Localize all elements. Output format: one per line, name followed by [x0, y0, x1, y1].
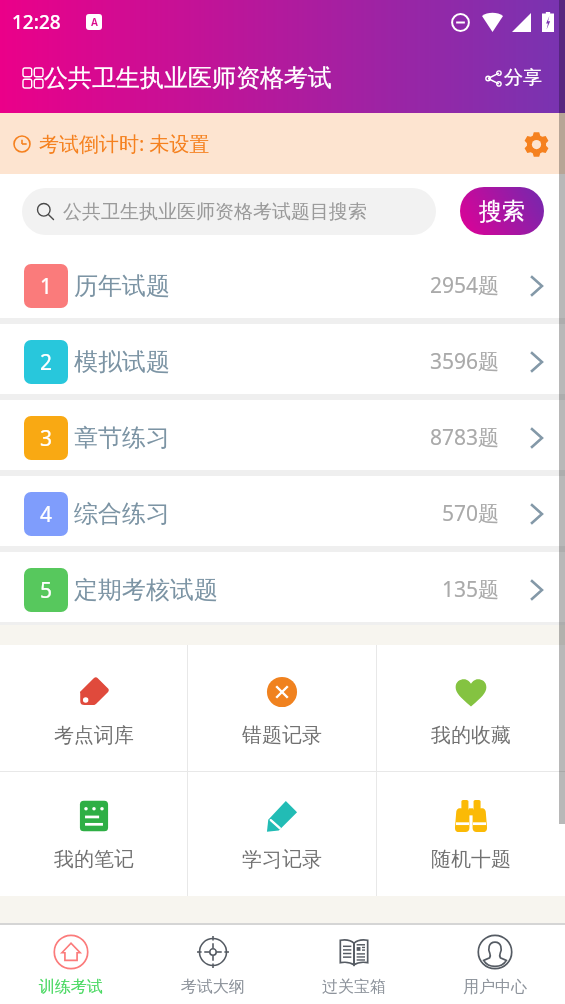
button[interactable]: 4 — [0, 476, 565, 546]
staticText: 训练考试 — [39, 977, 103, 997]
staticText: 公共卫生执业医师资格考试 — [44, 63, 332, 93]
button[interactable]: 考试倒计时: 未设置 — [0, 113, 565, 174]
staticText: 用户中心 — [463, 977, 527, 997]
staticText: 我的笔记 — [54, 847, 134, 872]
button[interactable]: 2 — [0, 324, 565, 394]
staticText: 综合练习 — [74, 499, 170, 529]
button[interactable]: 我的笔记 — [0, 772, 187, 896]
staticText: 章节练习 — [74, 423, 170, 453]
staticText: 2954题 — [430, 271, 500, 300]
staticText: 过关宝箱 — [322, 977, 386, 997]
button[interactable]: Settings — [520, 128, 552, 160]
button[interactable]: 我的收藏 — [377, 645, 565, 771]
button[interactable]: 公共卫生执业医师资格考试题目搜索 — [22, 188, 436, 235]
staticText: 1 — [40, 272, 53, 301]
staticText: 135题 — [442, 575, 500, 604]
staticText: 我的收藏 — [431, 723, 511, 748]
button[interactable]: 用户中心 — [424, 925, 565, 1004]
staticText: 搜索 — [479, 197, 525, 226]
staticText: 2 — [40, 348, 53, 377]
staticText: 5 — [40, 576, 53, 605]
button[interactable]: 考点词库 — [0, 645, 187, 771]
staticText: 错题记录 — [242, 723, 322, 748]
button[interactable]: 考试大纲 — [142, 925, 283, 1004]
staticText: 模拟试题 — [74, 347, 170, 377]
staticText: 8783题 — [430, 423, 500, 452]
button[interactable]: 过关宝箱 — [283, 925, 424, 1004]
staticText: 3 — [40, 424, 53, 453]
staticText: 考点词库 — [54, 723, 134, 748]
staticText: 分享 — [504, 66, 542, 90]
staticText: 4 — [40, 500, 53, 529]
button[interactable]: 训练考试 — [0, 925, 142, 1004]
staticText: 考试大纲 — [181, 977, 245, 997]
staticText: 定期考核试题 — [74, 575, 218, 605]
staticText: 学习记录 — [242, 847, 322, 872]
staticText: 3596题 — [430, 347, 500, 376]
staticText: 12:28 — [12, 9, 61, 35]
button[interactable]: 1 — [0, 248, 565, 318]
button[interactable]: 随机十题 — [377, 772, 565, 896]
staticText: 历年试题 — [74, 271, 170, 301]
button[interactable]: 3 — [0, 400, 565, 470]
staticText: A — [91, 15, 98, 29]
button[interactable]: 错题记录 — [188, 645, 376, 771]
button[interactable]: 搜索 — [460, 187, 544, 235]
staticText: 570题 — [442, 499, 500, 528]
staticText: 考试倒计时: 未设置 — [39, 130, 210, 157]
staticText: 随机十题 — [431, 847, 511, 872]
staticText: 公共卫生执业医师资格考试题目搜索 — [63, 200, 367, 224]
button[interactable]: 分享 — [483, 60, 544, 96]
button[interactable]: 学习记录 — [188, 772, 376, 896]
button[interactable]: 5 — [0, 552, 565, 622]
